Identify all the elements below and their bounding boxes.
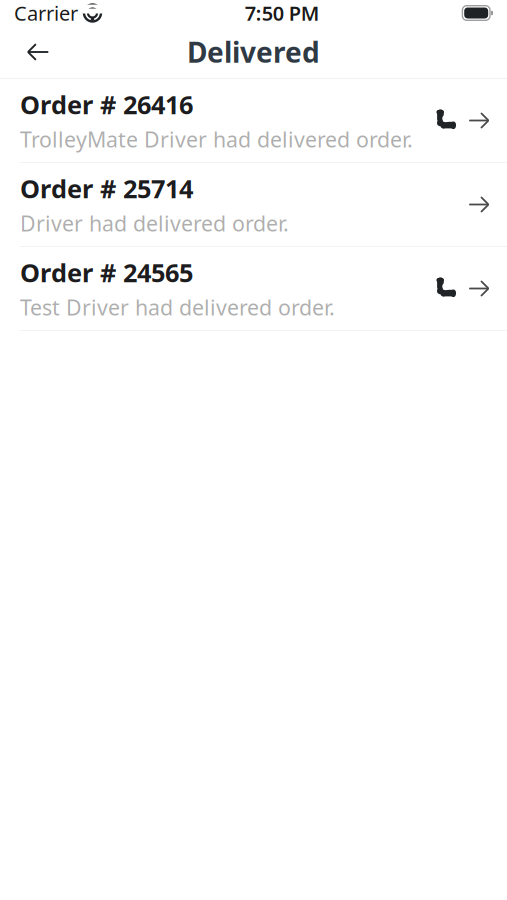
staticText: Test Driver had delivered order. (20, 293, 335, 321)
staticText: Delivered (187, 33, 320, 71)
staticText: Order # 24565 (20, 255, 193, 289)
button[interactable]: Order # 26416 (0, 79, 507, 162)
staticText: Order # 26416 (20, 87, 193, 121)
button[interactable]: Open order details (462, 100, 496, 140)
button[interactable]: Open order details (462, 268, 496, 308)
button[interactable]: Call driver (428, 100, 462, 140)
button[interactable]: Order # 25714 (0, 163, 507, 246)
staticText: 7:50 PM (245, 0, 320, 26)
staticText: Driver had delivered order. (20, 209, 289, 237)
staticText: Order # 25714 (20, 171, 193, 205)
staticText: TrolleyMate Driver had delivered order. (20, 125, 413, 153)
button[interactable]: Call driver (428, 268, 462, 308)
button[interactable]: Order # 24565 (0, 247, 507, 330)
staticText: Carrier (14, 0, 78, 26)
button[interactable]: Back (15, 29, 61, 75)
button[interactable]: Open order details (462, 184, 496, 224)
